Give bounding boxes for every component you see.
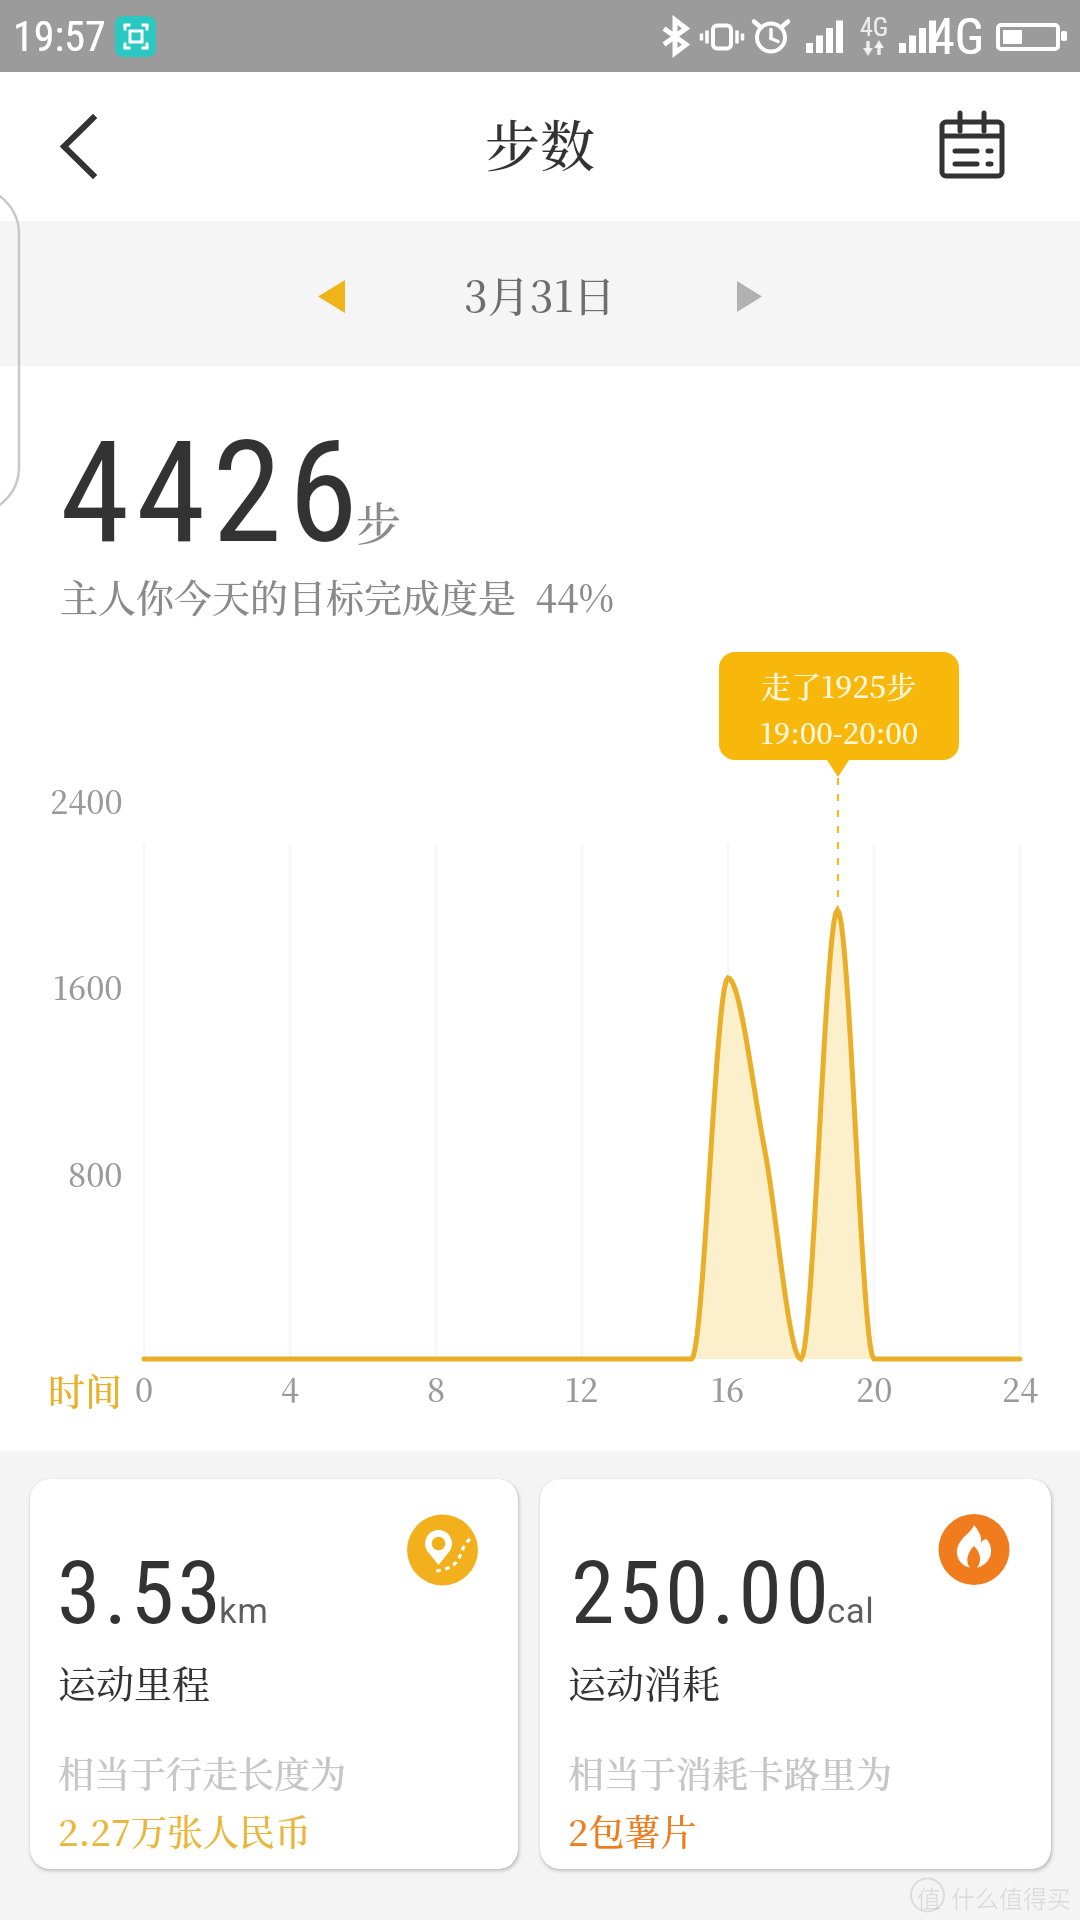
staticText: 4G [860,12,889,42]
staticText: 3月31日 [464,264,616,324]
staticText: 19:00-20:00 [760,711,919,753]
staticText: 相当于消耗卡路里为 [568,1747,893,1799]
button[interactable]: Previous day [290,246,380,342]
staticText: 16 [711,1365,745,1411]
staticText: 4426 [60,410,365,575]
staticText: 值 [917,1880,941,1915]
staticText: 1600 [53,963,123,1009]
staticText: cal [827,1591,875,1632]
staticText: 运动消耗 [568,1654,721,1709]
button[interactable]: Back [28,98,128,194]
staticText: 走了1925步 [761,663,917,706]
staticText: 2.27万张人民币 [58,1805,311,1857]
staticText: 0 [135,1365,154,1411]
staticText: 24 [1002,1365,1039,1411]
staticText: 步 [356,489,402,554]
staticText: 步数 [485,103,596,182]
staticText: 250.00 [571,1541,833,1644]
button[interactable]: Next day [710,246,800,342]
staticText: 8 [427,1365,446,1411]
button[interactable]: 3.53 [30,1479,518,1869]
staticText: 800 [68,1150,123,1196]
staticText: 4 [281,1365,300,1411]
staticText: 什么值得买 [951,1880,1071,1915]
staticText: 4G [930,8,985,67]
staticText: 2400 [50,777,123,823]
staticText: 时间 [48,1363,122,1416]
staticText: 运动里程 [58,1654,211,1709]
staticText: 2包薯片 [568,1805,697,1857]
staticText: km [219,1591,269,1632]
staticText: 12 [565,1365,599,1411]
staticText: 20 [856,1365,893,1411]
staticText: 相当于行走长度为 [58,1747,347,1799]
staticText: 主人你今天的目标完成度是 44% [60,568,614,623]
button[interactable]: 250.00 [540,1479,1051,1869]
button[interactable]: Calendar [922,99,1022,195]
staticText: 3.53 [57,1541,225,1644]
staticText: 19:57 [13,12,106,61]
